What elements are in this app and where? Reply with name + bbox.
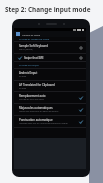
staticText: Step 2: Change input mode	[5, 5, 91, 14]
button[interactable]: Android Input	[14, 69, 86, 80]
button[interactable]: Langue et saisie	[14, 31, 86, 37]
button[interactable]: Enabled	[14, 54, 86, 61]
staticText: Android Input	[19, 71, 38, 75]
other: Settings	[79, 56, 83, 60]
staticText: Remplacement auto	[19, 94, 46, 98]
staticText: AF Translated for Clipboard	[19, 83, 55, 87]
button[interactable]: Remplacement auto	[14, 92, 86, 103]
staticText: no data	[19, 87, 27, 90]
staticText: CLAVIER ET MODES DE SAISIE	[19, 38, 50, 41]
button[interactable]: Sample Soft Keyboard	[14, 42, 86, 53]
button[interactable]: Majuscules automatiques	[14, 104, 86, 115]
staticText: Majuscules automatiques	[19, 106, 53, 110]
other: Enabled	[79, 120, 83, 124]
staticText: Sample Soft Keyboard	[19, 44, 48, 48]
other: Enabled	[79, 96, 83, 100]
staticText: Ponctuation automatique	[19, 118, 53, 122]
other: Enabled	[18, 56, 22, 60]
button[interactable]: AF Translated for Clipboard	[14, 81, 86, 91]
staticText: Corrige les mots mal saisis	[19, 98, 44, 101]
staticText: CLAVIER PHYSIQUE	[19, 64, 39, 67]
staticText: Appuyez deux fois sur la touche Espace p…	[19, 122, 68, 125]
staticText: Swipe that IME	[24, 56, 44, 60]
staticText: no data	[19, 75, 27, 78]
staticText: Langue et saisie	[22, 33, 41, 36]
other: Enabled	[79, 108, 83, 112]
staticText: azerty (Device)	[19, 48, 33, 51]
staticText: Mettre une majuscule en debut de phrase	[19, 110, 59, 113]
button[interactable]: Ponctuation automatique	[14, 116, 86, 127]
other: Settings	[79, 46, 83, 50]
